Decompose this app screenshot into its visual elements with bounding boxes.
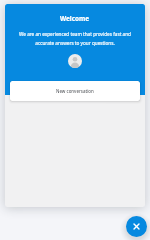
staticText: Welcome	[60, 14, 90, 23]
staticText: New conversation	[56, 88, 94, 94]
staticText: We are an experienced team that provides…	[13, 31, 137, 46]
button[interactable]: Close	[126, 216, 147, 237]
button[interactable]: New conversation	[10, 81, 140, 101]
